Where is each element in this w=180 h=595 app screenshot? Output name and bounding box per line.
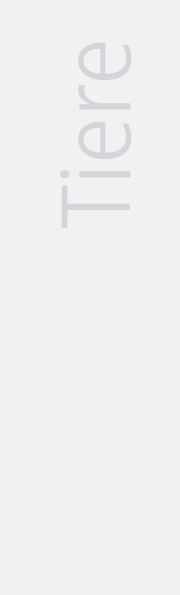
button[interactable]: Tiere xyxy=(23,0,163,283)
staticText: Tiere xyxy=(0,68,180,199)
